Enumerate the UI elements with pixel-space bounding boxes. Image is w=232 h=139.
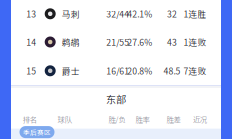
staticText: 马刺 xyxy=(62,7,80,20)
staticText: 20.8% xyxy=(127,64,152,77)
staticText: 7连败 xyxy=(184,64,207,77)
staticText: 东部 xyxy=(106,92,126,106)
button[interactable]: 14 xyxy=(11,28,221,56)
staticText: 32 xyxy=(167,7,177,20)
staticText: 27.6% xyxy=(127,36,152,48)
staticText: 15 xyxy=(26,64,36,77)
staticText: 胜率 xyxy=(135,114,149,125)
button[interactable]: 13 xyxy=(11,0,221,28)
staticText: 43 xyxy=(167,36,177,48)
staticText: 1连胜 xyxy=(184,7,207,20)
staticText: 16/61 xyxy=(106,64,129,77)
staticText: 爵士 xyxy=(62,64,80,77)
staticText: 球队 xyxy=(57,114,71,125)
staticText: 近况 xyxy=(193,114,207,125)
staticText: 42.1% xyxy=(127,7,152,20)
staticText: 排名 xyxy=(23,114,37,125)
staticText: 32/44 xyxy=(106,7,129,20)
staticText: 14 xyxy=(26,36,36,48)
staticText: 1连败 xyxy=(184,36,207,48)
staticText: 21/55 xyxy=(106,36,129,48)
staticText: 胜差 xyxy=(166,114,180,125)
staticText: 48.5 xyxy=(163,64,180,77)
staticText: 鹈鹕 xyxy=(62,36,80,48)
button[interactable]: 15 xyxy=(11,56,221,85)
staticText: 13 xyxy=(26,7,36,20)
staticText: 胜/负 xyxy=(108,114,125,125)
staticText: 季后赛区 xyxy=(23,127,51,137)
